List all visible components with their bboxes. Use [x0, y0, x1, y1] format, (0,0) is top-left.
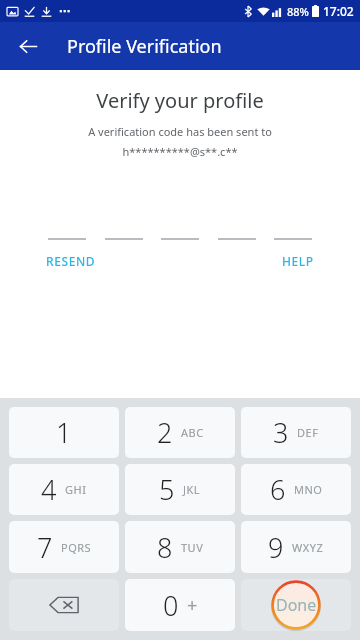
staticText: 17:02	[323, 3, 354, 19]
staticText: 5	[159, 471, 175, 508]
staticText: +	[187, 593, 198, 618]
button[interactable]: HELP	[276, 250, 320, 272]
staticText: 6	[270, 471, 286, 508]
button[interactable]: 1	[9, 407, 119, 458]
staticText: Verify your profile	[96, 87, 264, 114]
staticText: h**********@s**.c**	[122, 144, 238, 159]
staticText: Profile Verification	[67, 34, 222, 59]
button[interactable]: Back	[10, 28, 46, 64]
staticText: ABC	[181, 425, 204, 440]
staticText: DEF	[297, 425, 319, 440]
staticText: Done	[276, 594, 317, 616]
button[interactable]	[161, 220, 199, 240]
staticText: 0	[163, 587, 179, 624]
staticText: WXYZ	[292, 540, 324, 555]
button[interactable]: 3	[241, 407, 351, 458]
button[interactable]: 8	[125, 521, 235, 573]
staticText: 88%	[287, 4, 309, 19]
button[interactable]: 0	[125, 579, 235, 631]
staticText: 7	[37, 529, 53, 566]
button[interactable]: 9	[241, 521, 351, 573]
button[interactable]	[274, 220, 312, 240]
button[interactable]: 4	[9, 464, 119, 515]
button[interactable]: RESEND	[40, 250, 102, 272]
staticText: MNO	[294, 482, 323, 497]
staticText: 1	[56, 414, 72, 451]
button[interactable]: 2	[125, 407, 235, 458]
staticText: RESEND	[46, 253, 96, 269]
staticText: A verification code has been sent to	[88, 124, 272, 139]
staticText: JKL	[183, 482, 201, 497]
staticText: 4	[41, 471, 57, 508]
staticText: TUV	[181, 540, 204, 555]
staticText: 8	[157, 529, 173, 566]
staticText: 3	[273, 414, 289, 451]
button[interactable]	[218, 220, 256, 240]
button[interactable]: 6	[241, 464, 351, 515]
staticText: GHI	[65, 482, 87, 497]
button[interactable]: Done	[241, 579, 351, 631]
staticText: PQRS	[61, 540, 92, 555]
button[interactable]: 7	[9, 521, 119, 573]
staticText: HELP	[282, 253, 314, 269]
staticText: 9	[268, 529, 284, 566]
staticText: ⋯	[59, 5, 70, 18]
staticText: 2	[157, 414, 173, 451]
button[interactable]	[105, 220, 143, 240]
button[interactable]: 5	[125, 464, 235, 515]
button[interactable]	[48, 220, 86, 240]
button[interactable]: Backspace	[9, 579, 119, 631]
